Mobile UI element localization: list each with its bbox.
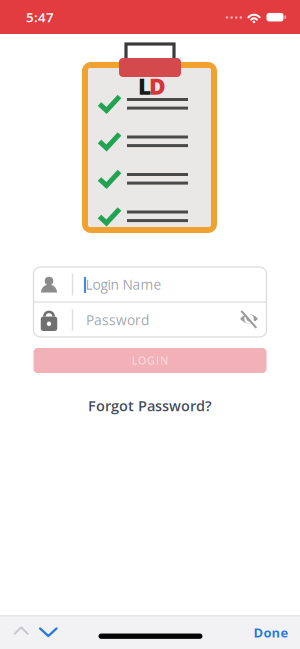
staticText: Login Name bbox=[85, 275, 161, 294]
staticText: Password bbox=[86, 311, 149, 329]
button[interactable]: Show password bbox=[237, 306, 261, 330]
staticText: Done bbox=[253, 624, 288, 641]
button[interactable]: Done bbox=[253, 624, 288, 641]
staticText: LOGIN bbox=[132, 353, 168, 368]
staticText: 5:47 bbox=[26, 8, 54, 26]
button[interactable]: Forgot Password? bbox=[88, 396, 212, 415]
button[interactable]: Password bbox=[33, 302, 266, 337]
staticText: D bbox=[149, 71, 166, 101]
button[interactable]: Next field bbox=[39, 626, 57, 637]
staticText: L bbox=[138, 71, 151, 101]
staticText: Forgot Password? bbox=[88, 396, 212, 415]
button[interactable]: Login Name bbox=[33, 267, 266, 302]
button[interactable]: LOGIN bbox=[33, 348, 266, 373]
button[interactable]: Previous field bbox=[12, 625, 30, 636]
